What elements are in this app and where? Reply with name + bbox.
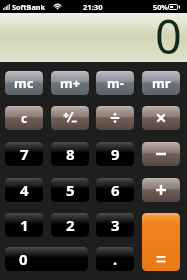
staticText: 4 bbox=[20, 180, 29, 200]
button[interactable]: Add bbox=[142, 178, 180, 202]
staticText: m+ bbox=[60, 74, 81, 92]
button[interactable]: mc bbox=[5, 71, 43, 95]
button[interactable]: c bbox=[5, 106, 43, 130]
button[interactable]: Multiply bbox=[142, 106, 180, 130]
button[interactable]: Plus minus bbox=[51, 106, 89, 130]
button[interactable]: 8 bbox=[51, 142, 89, 166]
button[interactable]: Subtract bbox=[142, 142, 180, 166]
button[interactable]: 3 bbox=[96, 213, 134, 237]
button[interactable]: 9 bbox=[96, 142, 134, 166]
staticText: 6 bbox=[111, 180, 120, 200]
staticText: 50% bbox=[153, 2, 168, 12]
staticText: mc bbox=[14, 74, 34, 92]
button[interactable]: . bbox=[96, 247, 134, 271]
staticText: 5 bbox=[66, 180, 75, 200]
button[interactable]: Equals bbox=[142, 213, 180, 271]
staticText: 3 bbox=[111, 215, 120, 235]
button[interactable]: 2 bbox=[51, 213, 89, 237]
button[interactable]: Divide bbox=[96, 106, 134, 130]
staticText: m- bbox=[107, 74, 124, 92]
staticText: 8 bbox=[66, 144, 75, 164]
button[interactable]: 5 bbox=[51, 178, 89, 202]
staticText: 0 bbox=[19, 249, 28, 269]
button[interactable]: 1 bbox=[5, 213, 43, 237]
staticText: 7 bbox=[20, 144, 29, 164]
staticText: mr bbox=[152, 74, 171, 92]
button[interactable]: 7 bbox=[5, 142, 43, 166]
button[interactable]: m- bbox=[96, 71, 134, 95]
button[interactable]: 4 bbox=[5, 178, 43, 202]
staticText: SoftBank bbox=[12, 2, 46, 12]
button[interactable]: m+ bbox=[51, 71, 89, 95]
staticText: 0 bbox=[155, 4, 182, 68]
button[interactable]: mr bbox=[142, 71, 180, 95]
staticText: 9 bbox=[111, 144, 120, 164]
staticText: 21:30 bbox=[83, 2, 103, 12]
staticText: 1 bbox=[20, 215, 29, 235]
staticText: 2 bbox=[66, 215, 75, 235]
button[interactable]: 0 bbox=[5, 247, 88, 271]
staticText: . bbox=[113, 249, 118, 269]
staticText: c bbox=[21, 110, 28, 126]
button[interactable]: 6 bbox=[96, 178, 134, 202]
